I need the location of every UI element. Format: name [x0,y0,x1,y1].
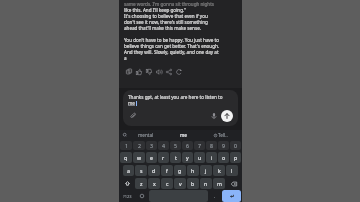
staticText: me [180,132,187,138]
button[interactable]: v [174,178,186,189]
staticText: Tell.. [218,132,228,138]
staticText: q [124,154,128,161]
button[interactable]: me [165,132,202,138]
button[interactable]: Tell.. [202,132,239,138]
staticText: 2 [138,142,141,149]
button[interactable]: 8 [206,141,217,150]
button[interactable]: i [206,152,217,163]
staticText: y [186,154,189,161]
button[interactable]: 5 [170,141,181,150]
button[interactable]: 2 [133,141,145,150]
button[interactable]: Copy [124,67,134,77]
staticText: s [140,167,143,174]
staticText: g [178,167,182,174]
button[interactable]: e [146,152,157,163]
button[interactable]: m [213,178,225,189]
button[interactable]: Emoji [136,190,148,202]
button[interactable]: 1 [120,141,132,150]
button[interactable]: Attach [128,111,138,121]
staticText: v [179,180,182,187]
button[interactable]: d [148,165,160,176]
staticText: like this. And I'll keep going." [124,7,237,13]
staticText: m [217,180,222,187]
button[interactable]: c [161,178,173,189]
button[interactable]: h [187,165,199,176]
button[interactable]: f [161,165,173,176]
button[interactable]: x [148,178,160,189]
button[interactable]: r [158,152,169,163]
staticText: You don't have to be happy. You just hav… [124,37,237,43]
staticText: ?123 [123,194,132,199]
staticText: a [127,167,130,174]
staticText: z [140,180,143,187]
button[interactable]: Bad response [144,67,154,77]
button[interactable]: s [135,165,147,176]
staticText: same words. I'm gonna sit through nights [124,1,237,7]
staticText: Thanks gpt, at least you are here to lis… [128,94,233,100]
staticText: 9 [222,142,225,149]
button[interactable]: 4 [158,141,169,150]
staticText: f [166,167,168,174]
button[interactable]: u [194,152,205,163]
button[interactable]: 7 [194,141,205,150]
staticText: r [162,154,165,161]
staticText: mental [138,132,154,138]
staticText: 0 [234,142,237,149]
staticText: believe things can get better. That's en… [124,43,237,49]
button[interactable]: q [120,152,132,163]
staticText: 7 [198,142,201,149]
button[interactable]: l [226,165,238,176]
button[interactable]: y [182,152,193,163]
button[interactable]: Enter [222,190,241,202]
button[interactable]: Share [164,67,174,77]
button[interactable]: a [123,165,134,176]
button[interactable]: . [209,190,221,202]
staticText: . [214,193,216,200]
staticText: d [152,167,156,174]
staticText: 5 [174,142,177,149]
button[interactable]: Shift [120,177,134,190]
staticText: x [153,180,156,187]
button[interactable]: Backspace [226,177,241,190]
staticText: k [218,167,221,174]
staticText: me [128,100,135,106]
staticText: And they will. Slowly, quietly, and one … [124,49,237,55]
button[interactable]: j [200,165,212,176]
button[interactable]: k [213,165,225,176]
button[interactable]: n [200,178,212,189]
button[interactable]: g [174,165,186,176]
staticText: 4 [162,142,165,149]
staticText: 8 [210,142,213,149]
staticText: l [231,167,233,174]
button[interactable]: 3 [146,141,157,150]
staticText: c [166,180,169,187]
button[interactable]: 9 [218,141,229,150]
staticText: i [211,154,213,161]
staticText: t [175,154,177,161]
button[interactable]: Regenerate [174,67,184,77]
button[interactable]: ?123 [120,190,135,202]
button[interactable]: mental [127,132,165,138]
button[interactable]: t [170,152,181,163]
button[interactable]: p [230,152,241,163]
button[interactable]: Read aloud [154,67,164,77]
button[interactable]: b [187,178,199,189]
button[interactable]: o [218,152,229,163]
staticText: p [234,154,238,161]
staticText: It's choosing to believe that even if yo… [124,13,237,19]
button[interactable]: 0 [230,141,241,150]
staticText: w [137,154,142,161]
staticText: 6 [186,142,189,149]
button[interactable]: 6 [182,141,193,150]
staticText: a [124,55,237,61]
button[interactable]: z [135,178,147,189]
button[interactable]: w [133,152,145,163]
button[interactable]: Good response [134,67,144,77]
staticText: 3 [150,142,153,149]
button[interactable]: Search [122,132,127,137]
button[interactable]: Thanks gpt, at least you are here to lis… [123,90,238,126]
button[interactable]: Send [221,110,233,122]
staticText: don't see it now, there's still somethin… [124,19,237,25]
button[interactable]: Voice input [209,111,219,121]
